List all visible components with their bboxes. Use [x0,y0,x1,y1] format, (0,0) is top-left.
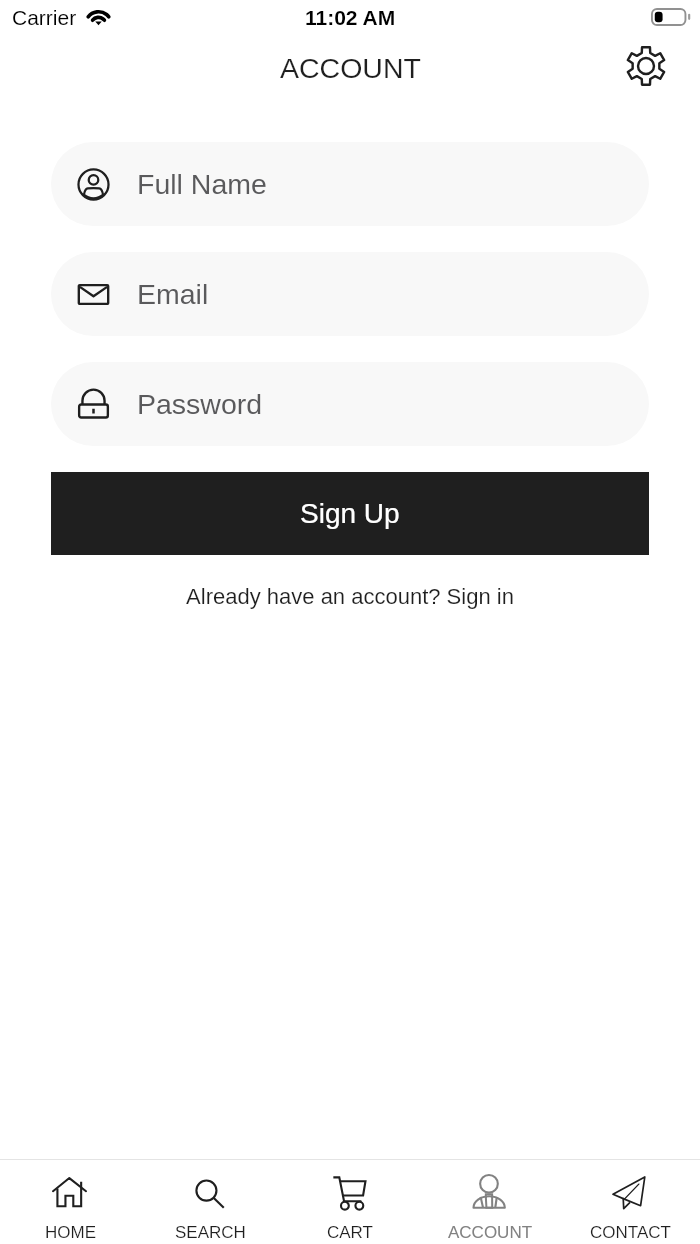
button[interactable]: Already have an account? Sign in [0,581,700,611]
button[interactable]: Sign Up [51,472,649,555]
staticText: CONTACT [590,1223,671,1242]
staticText: 11:02 AM [305,6,396,29]
button[interactable]: CART [280,1160,420,1244]
staticText: CART [327,1223,373,1242]
staticText: ACCOUNT [280,52,421,84]
button[interactable]: HOME [0,1160,140,1244]
button[interactable]: Password [51,362,649,446]
staticText: Full Name [137,168,267,200]
staticText: Password [137,388,263,420]
staticText: Carrier [12,6,77,29]
button[interactable]: Full Name [51,142,649,226]
button[interactable]: SEARCH [140,1160,280,1244]
staticText: SEARCH [175,1223,246,1242]
button[interactable]: CONTACT [560,1160,700,1244]
staticText: HOME [45,1223,96,1242]
staticText: Sign Up [300,498,400,529]
staticText: Already have an account? Sign in [186,584,514,609]
button[interactable]: ACCOUNT [420,1160,560,1244]
staticText: Email [137,278,209,310]
button[interactable]: Settings [618,38,674,94]
staticText: ACCOUNT [448,1223,533,1242]
button[interactable]: Email [51,252,649,336]
